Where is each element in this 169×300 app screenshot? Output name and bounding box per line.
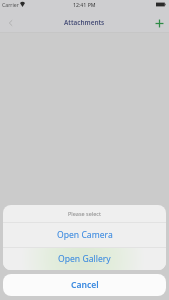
staticText: Open Camera [57, 229, 113, 241]
staticText: Carrier [2, 1, 19, 8]
button[interactable]: Open Gallery [3, 248, 166, 270]
button[interactable]: Cancel [3, 274, 166, 296]
staticText: Cancel [71, 279, 99, 291]
staticText: Please select [68, 210, 101, 217]
staticText: 12:41 PM [73, 1, 96, 8]
staticText: Attachments [64, 18, 105, 27]
button[interactable]: Add [149, 14, 169, 32]
button[interactable]: Open Camera [3, 223, 166, 247]
staticText: Open Gallery [58, 253, 111, 265]
